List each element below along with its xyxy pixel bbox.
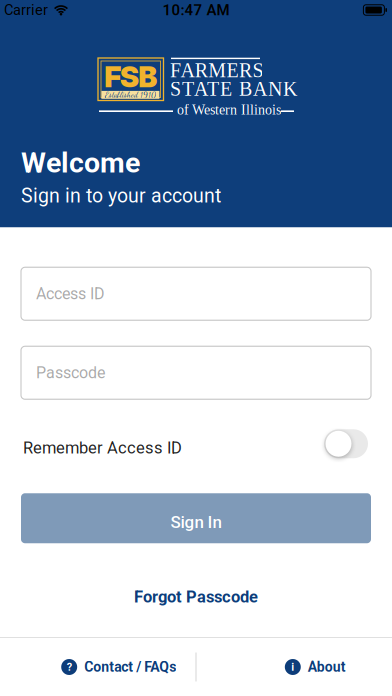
staticText: FARMERS <box>170 59 263 81</box>
button[interactable]: Sign In <box>21 493 371 543</box>
button[interactable]: Passcode <box>0 346 392 399</box>
button[interactable]: Access ID <box>0 267 392 320</box>
button[interactable]: i <box>197 638 392 696</box>
staticText: 10:47 AM <box>162 1 229 19</box>
button[interactable]: ? <box>0 638 195 696</box>
staticText: STATE BANK <box>170 78 297 100</box>
staticText: Established 1910 <box>105 90 156 100</box>
staticText: Sign in to your account <box>21 184 221 207</box>
staticText: Welcome <box>21 146 140 179</box>
staticText: ? <box>67 661 72 673</box>
staticText: Passcode <box>36 363 105 382</box>
staticText: Forgot Passcode <box>134 587 258 606</box>
staticText: Carrier <box>4 1 48 18</box>
staticText: Remember Access ID <box>23 438 182 457</box>
button[interactable]: Remember Access ID <box>324 429 368 458</box>
staticText: of Western Illinois <box>177 102 281 117</box>
button[interactable]: Forgot Passcode <box>134 587 258 606</box>
staticText: About <box>308 659 346 675</box>
staticText: Sign In <box>170 512 221 532</box>
staticText: Access ID <box>36 284 105 303</box>
staticText: i <box>291 661 294 673</box>
staticText: FSB <box>104 59 157 94</box>
staticText: Contact / FAQs <box>84 659 176 675</box>
